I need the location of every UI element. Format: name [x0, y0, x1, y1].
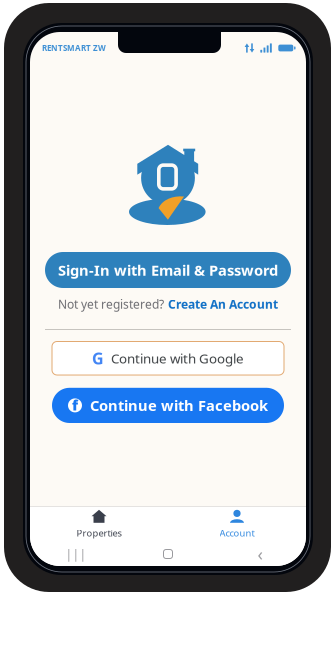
- staticText: Account: [219, 527, 254, 539]
- staticText: Create An Account: [168, 296, 278, 312]
- staticText: ‹: [257, 542, 262, 565]
- staticText: Properties: [76, 527, 121, 539]
- button[interactable]: Properties: [30, 507, 168, 542]
- staticText: Not yet registered?: [58, 296, 164, 312]
- button[interactable]: Recent apps: [30, 542, 122, 566]
- button[interactable]: Sign-In with Email & Password: [45, 252, 291, 288]
- staticText: RENTSMART ZW: [42, 43, 106, 53]
- staticText: f: [72, 395, 78, 415]
- staticText: Continue with Google: [111, 349, 244, 367]
- button[interactable]: Account: [168, 507, 306, 542]
- staticText: Continue with Facebook: [90, 396, 268, 415]
- staticText: Sign-In with Email & Password: [58, 260, 278, 280]
- button[interactable]: Not yet registered?: [45, 288, 291, 320]
- button[interactable]: f: [52, 388, 284, 423]
- staticText: G: [92, 348, 104, 369]
- staticText: |||: [65, 546, 86, 562]
- button[interactable]: Back: [214, 542, 306, 566]
- button[interactable]: Home: [122, 542, 214, 566]
- button[interactable]: G: [52, 341, 284, 375]
